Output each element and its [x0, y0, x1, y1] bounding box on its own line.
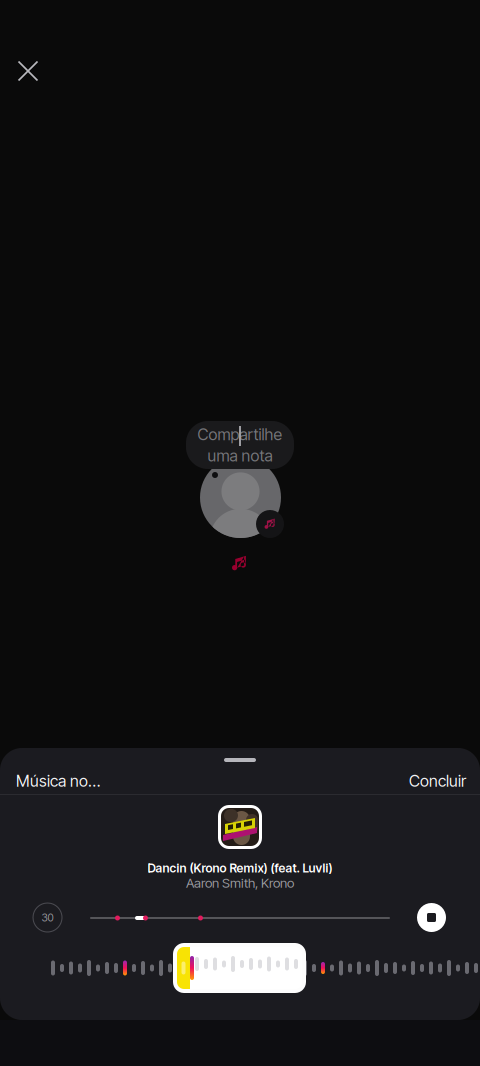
staticText: Compartilhe [197, 425, 282, 444]
button[interactable]: Concluir [409, 770, 466, 792]
button[interactable]: Compartilhe [186, 421, 294, 469]
staticText: Dancin (Krono Remix) (feat. Luvli) [147, 861, 332, 875]
staticText: Concluir [409, 771, 466, 791]
staticText: Aaron Smith, Krono [186, 875, 294, 891]
staticText: uma nota [207, 446, 272, 465]
button[interactable]: Clip length 30 seconds [33, 903, 62, 932]
button[interactable]: Trim selection [173, 943, 306, 993]
button[interactable]: Close [6, 49, 50, 93]
staticText: Música no… [16, 771, 100, 791]
button[interactable]: Stop [417, 903, 446, 932]
staticText: 30 [41, 911, 53, 924]
